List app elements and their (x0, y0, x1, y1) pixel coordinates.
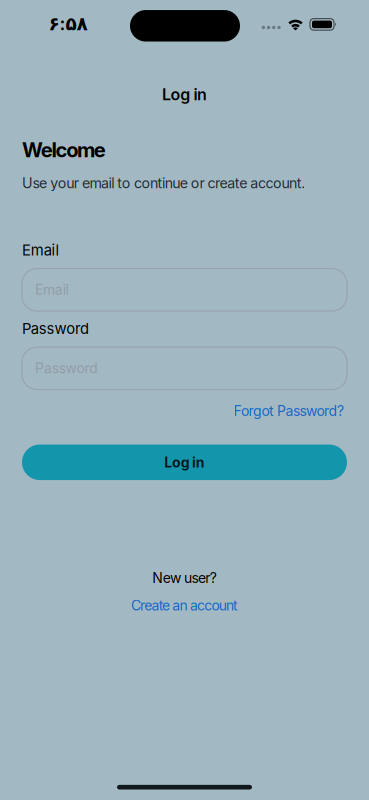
staticText: Password (22, 353, 126, 383)
staticText: Password (22, 319, 89, 337)
staticText: Log in (164, 454, 205, 471)
staticText: Email (22, 275, 81, 305)
button[interactable]: Log in (22, 445, 347, 480)
staticText: Email (35, 281, 69, 298)
staticText: Welcome (22, 138, 106, 162)
staticText: Email (22, 241, 59, 259)
staticText: Log in (162, 85, 207, 104)
staticText: Use your email to continue or create acc… (22, 174, 305, 192)
button[interactable]: Create an account (131, 597, 238, 614)
button[interactable]: Forgot Password? (233, 402, 347, 419)
staticText: New user? (152, 569, 217, 586)
textField[interactable]: Password (22, 353, 347, 383)
staticText: Password (35, 360, 97, 377)
staticText: ۶:۵۸ (48, 12, 87, 35)
staticText: Create an account (131, 597, 238, 614)
staticText: Forgot Password? (233, 402, 344, 419)
